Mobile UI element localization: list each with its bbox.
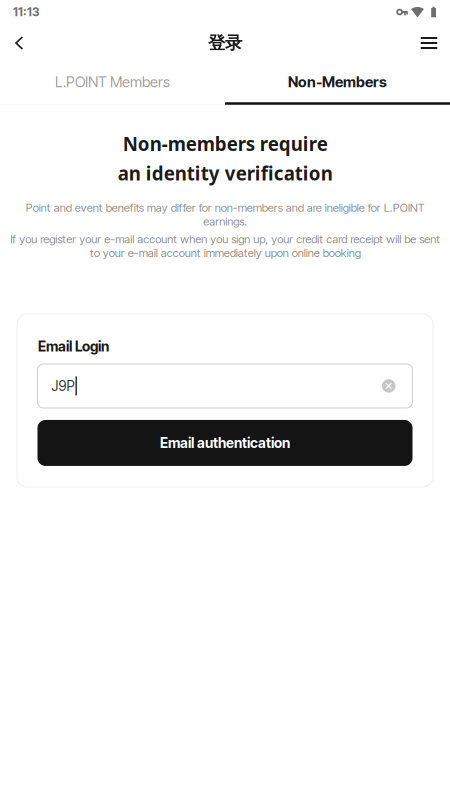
staticText: L.POINT Members <box>55 73 170 91</box>
staticText: Email authentication <box>160 434 290 451</box>
staticText: 登录 <box>208 32 242 54</box>
staticText: J9P <box>51 377 74 394</box>
staticText: Point and event benefits may differ for … <box>25 201 424 228</box>
staticText: Email Login <box>38 338 109 355</box>
staticText: an identity verification <box>117 160 332 186</box>
button[interactable]: Menu <box>412 24 446 62</box>
staticText: 11:13 <box>13 5 40 19</box>
staticText: If you register your e-mail account when… <box>10 232 440 260</box>
staticText: Non-Members <box>288 73 387 91</box>
button[interactable]: Back <box>2 24 36 62</box>
button[interactable]: Non-Members <box>225 62 450 102</box>
button[interactable]: Email authentication <box>37 420 412 466</box>
button[interactable]: L.POINT Members <box>0 62 225 102</box>
staticText: Non-members require <box>122 131 327 156</box>
